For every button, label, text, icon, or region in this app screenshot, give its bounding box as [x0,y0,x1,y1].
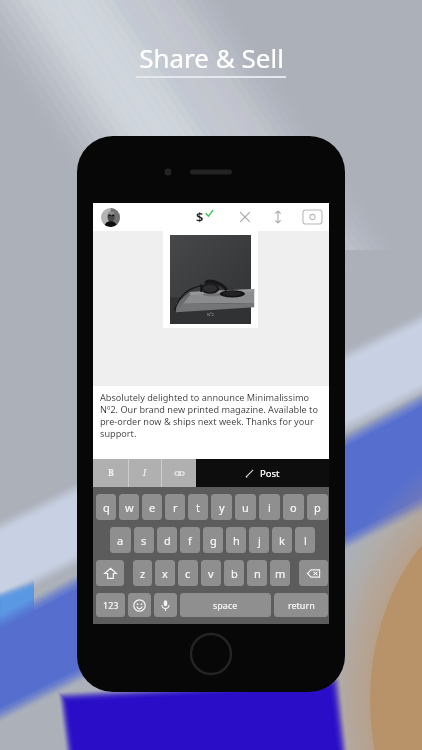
button[interactable]: p [307,494,328,520]
button[interactable]: c [178,560,198,586]
button[interactable]: space [180,593,271,617]
button[interactable]: o [283,494,304,520]
button[interactable]: i [259,494,280,520]
button[interactable]: Backspace [299,560,328,586]
staticText: g [210,533,217,548]
staticText: q [103,500,110,515]
button[interactable]: k [272,527,292,553]
button[interactable]: q [96,494,116,520]
button[interactable]: Set a price [191,205,215,229]
button[interactable]: n [247,560,267,586]
staticText: w [125,500,134,515]
staticText: l [304,533,307,548]
button[interactable]: Profile photo [101,208,120,227]
staticText: u [242,500,249,515]
button[interactable]: v [201,560,221,586]
staticText: B [108,467,114,479]
staticText: $ [196,208,204,226]
staticText: space [213,599,238,611]
button[interactable]: j [249,527,269,553]
staticText: f [188,533,192,548]
staticText: 123 [103,599,119,611]
staticText: t [196,500,200,515]
button[interactable]: r [165,494,185,520]
button[interactable]: x [155,560,175,586]
button[interactable]: Emoji [128,593,151,617]
button[interactable]: a [110,527,131,553]
staticText: s [141,533,147,548]
staticText: Post [260,467,280,480]
staticText: m [275,566,286,581]
button[interactable]: z [133,560,152,586]
button[interactable]: Shift [96,560,124,586]
button[interactable]: I [129,459,161,487]
button[interactable]: u [235,494,256,520]
button[interactable]: w [119,494,139,520]
staticText: Share & Sell [139,40,284,75]
button[interactable]: Insert link [162,459,196,487]
button[interactable]: f [180,527,200,553]
staticText: Nº2 [207,312,214,317]
staticText: Absolutely delighted to announce Minimal… [100,391,321,439]
staticText: z [140,566,146,581]
staticText: r [173,500,178,515]
button[interactable]: 123 [96,593,125,617]
button[interactable]: b [224,560,244,586]
button[interactable]: m [270,560,290,586]
button[interactable]: s [134,527,154,553]
button[interactable]: g [203,527,223,553]
staticText: h [233,533,240,548]
button[interactable]: e [142,494,162,520]
button[interactable]: Camera [303,210,322,224]
staticText: a [117,533,124,548]
button[interactable]: return [274,593,328,617]
staticText: k [279,533,285,548]
button[interactable]: Close [237,209,253,225]
staticText: p [314,500,321,515]
button[interactable]: l [295,527,315,553]
staticText: return [288,599,315,611]
staticText: v [208,566,214,581]
staticText: b [231,566,238,581]
button[interactable]: Post [196,459,329,487]
staticText: j [258,533,261,548]
staticText: o [290,500,297,515]
staticText: e [149,500,156,515]
staticText: y [219,500,225,515]
button[interactable]: h [226,527,246,553]
button[interactable]: Resize [270,209,286,225]
staticText: I [143,467,147,479]
staticText: c [185,566,191,581]
button[interactable]: d [157,527,177,553]
staticText: d [164,533,171,548]
button[interactable]: B [93,459,128,487]
button[interactable]: Dictation [154,593,177,617]
button[interactable]: y [211,494,232,520]
staticText: i [268,500,271,515]
staticText: x [162,566,168,581]
staticText: n [254,566,261,581]
button[interactable]: t [188,494,208,520]
